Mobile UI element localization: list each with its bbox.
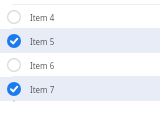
- button[interactable]: Selected: [0, 29, 160, 53]
- button[interactable]: Not selected: [0, 53, 160, 77]
- button[interactable]: Not selected: [0, 5, 160, 29]
- staticText: Item 5: [30, 36, 55, 47]
- button[interactable]: Not selected: [0, 0, 160, 5]
- staticText: Item 4: [30, 12, 55, 23]
- other: Not selected: [7, 10, 21, 24]
- other: Selected: [7, 82, 21, 96]
- staticText: Item 6: [30, 60, 55, 71]
- button[interactable]: Selected: [0, 77, 160, 101]
- other: Selected: [7, 34, 21, 48]
- other: Not selected: [7, 58, 21, 72]
- staticText: Item 7: [30, 84, 55, 95]
